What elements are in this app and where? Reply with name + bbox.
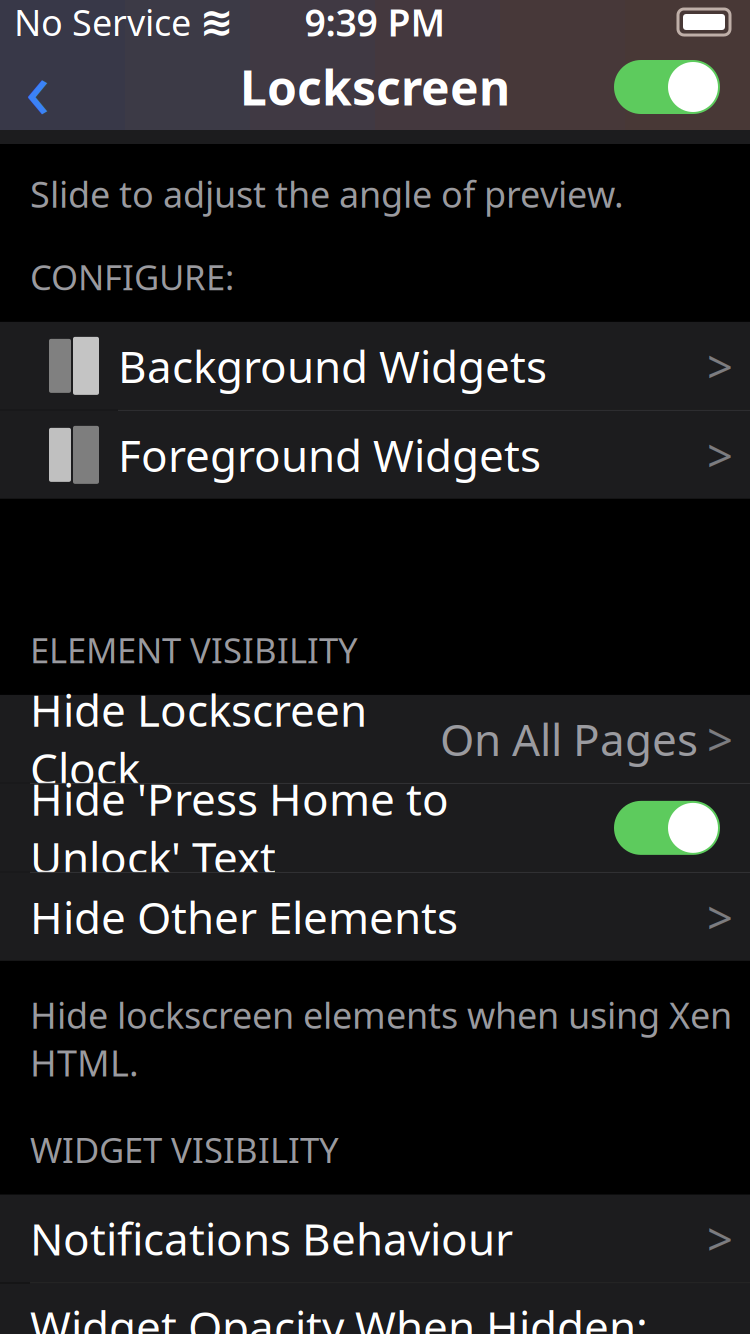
staticText: WIDGET VISIBILITY (30, 1126, 339, 1172)
staticText: Notifications Behaviour (30, 1209, 513, 1268)
button[interactable]: Foreground Widgets (0, 411, 750, 499)
button[interactable]: Hide Lockscreen Clock (0, 695, 750, 783)
staticText: ‹ (25, 32, 51, 142)
staticText: ≋ (200, 0, 234, 45)
staticText: > (707, 887, 733, 947)
button[interactable]: Notifications Behaviour (0, 1194, 750, 1282)
staticText: No Service (14, 0, 191, 46)
staticText: CONFIGURE: (30, 254, 234, 300)
button[interactable]: Enable Lockscreen (594, 60, 750, 114)
staticText: On All Pages (440, 710, 698, 768)
staticText: Lockscreen (240, 55, 510, 119)
button[interactable]: Background Widgets (0, 322, 750, 410)
button[interactable]: Back (0, 50, 68, 124)
staticText: Hide Lockscreen Clock (30, 680, 367, 797)
staticText: > (707, 1208, 733, 1269)
staticText: ELEMENT VISIBILITY (30, 627, 358, 673)
staticText: Foreground Widgets (118, 426, 541, 484)
staticText: > (707, 336, 733, 396)
staticText: Hide 'Press Home to Unlock' Text (30, 769, 449, 886)
staticText: Hide lockscreen elements when using Xen … (30, 991, 732, 1086)
staticText: 9:39 PM (304, 0, 445, 47)
staticText: Slide to adjust the angle of preview. (30, 170, 624, 218)
button[interactable]: Hide 'Press Home to Unlock' Text (0, 784, 750, 872)
button[interactable]: Hide Other Elements (0, 873, 750, 961)
staticText: > (707, 425, 733, 485)
staticText: Hide Other Elements (30, 888, 458, 946)
staticText: Background Widgets (118, 337, 547, 395)
staticText: Widget Opacity When Hidden: (30, 1297, 648, 1334)
staticText: > (707, 709, 733, 769)
